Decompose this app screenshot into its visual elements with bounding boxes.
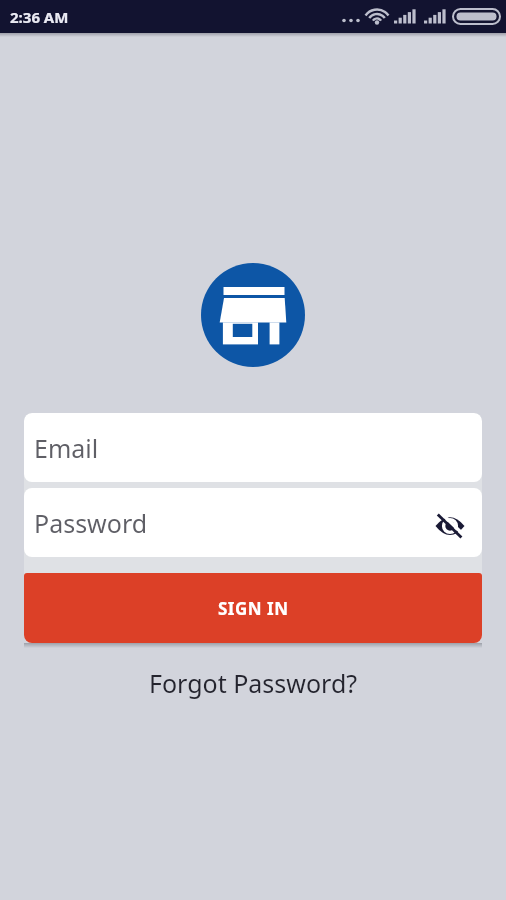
staticText: Password [34, 506, 148, 540]
staticText: Email [34, 431, 99, 465]
staticText: 2:36 AM [10, 7, 69, 27]
staticText: SIGN IN [218, 597, 289, 620]
button[interactable]: Email [24, 413, 482, 482]
button[interactable] [435, 511, 465, 541]
button[interactable]: Password [24, 488, 482, 557]
button[interactable]: Forgot Password? [149, 666, 358, 700]
button[interactable]: SIGN IN [24, 573, 482, 643]
